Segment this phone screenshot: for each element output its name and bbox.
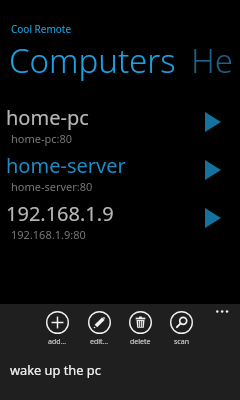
staticText: home-server:80 (11, 179, 93, 194)
staticText: wake up the pc (10, 361, 101, 378)
staticText: home-pc:80 (11, 131, 73, 146)
staticText: Computers (9, 38, 176, 83)
staticText: Cool Remote (11, 22, 72, 36)
staticText: scan (174, 337, 189, 347)
staticText: add… (48, 337, 67, 347)
button[interactable]: scan (170, 311, 193, 347)
button[interactable]: Connect to home-pc (205, 112, 221, 132)
staticText: 192.168.1.9 (6, 200, 114, 227)
staticText: home-pc (6, 104, 89, 131)
button[interactable]: home-pc (0, 102, 240, 150)
staticText: delete (130, 337, 151, 347)
staticText: 192.168.1.9:80 (11, 227, 86, 242)
button[interactable]: add… (46, 311, 69, 347)
staticText: Help (191, 38, 240, 83)
button[interactable]: 192.168.1.9 (0, 198, 240, 246)
button[interactable]: home-server (0, 150, 240, 198)
button[interactable]: delete (129, 311, 152, 347)
button[interactable]: Connect to 192.168.1.9 (205, 208, 221, 228)
button[interactable]: More options (207, 304, 238, 320)
button[interactable]: edit… (88, 311, 111, 347)
staticText: home-server (6, 152, 126, 179)
staticText: edit… (90, 337, 109, 347)
button[interactable]: Connect to home-server (205, 160, 221, 180)
